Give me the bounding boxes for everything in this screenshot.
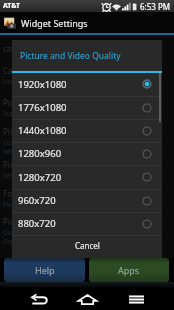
button[interactable]: 960x720 — [12, 190, 162, 213]
staticText: AT&T — [3, 1, 21, 11]
staticText: Picture Format — [3, 216, 59, 227]
button[interactable]: Menu — [119, 289, 153, 310]
staticText: During capture Copy to — [3, 228, 50, 246]
staticText: Focus Mode — [3, 188, 49, 199]
button[interactable]: 1920x1080 — [12, 73, 162, 97]
staticText: Picture Size — [3, 97, 47, 108]
button[interactable]: 1280x960 — [12, 143, 162, 166]
staticText: Widget Settings — [21, 17, 88, 29]
staticText: Picture and Video Quality — [20, 50, 121, 62]
button[interactable]: Help — [4, 258, 85, 282]
button[interactable]: Cancel — [12, 236, 162, 258]
staticText: 960x720 — [18, 194, 56, 207]
staticText: Camcorder Profile — [3, 65, 71, 76]
staticText: Picture and Video — [3, 159, 69, 170]
staticText: 1280x720 — [18, 171, 62, 184]
button[interactable]: Home — [70, 289, 104, 310]
staticText: Standard — [3, 109, 31, 118]
staticText: 1776x1080 — [18, 101, 67, 114]
button[interactable]: 1440x1080 — [12, 120, 162, 143]
staticText: Settings — [3, 171, 28, 180]
staticText: 1280x960 — [18, 147, 62, 160]
staticText: Flash — [3, 200, 19, 209]
staticText: Picture Compression — [3, 126, 81, 137]
staticText: 6:53 PM — [140, 1, 171, 12]
button[interactable]: 1280x720 — [12, 166, 162, 190]
staticText: Help — [35, 264, 55, 276]
staticText: 1920x1080 — [18, 78, 67, 91]
button[interactable]: Apps — [89, 258, 169, 282]
staticText: cation Quality — [3, 43, 55, 54]
staticText: Custom quality: 80% when sharing — [3, 138, 66, 156]
staticText: Apps — [118, 264, 140, 276]
staticText: 1440x1080 — [18, 124, 67, 137]
staticText: 880x720 — [18, 217, 56, 230]
button[interactable]: 1776x1080 — [12, 97, 162, 120]
staticText: Cancel — [75, 240, 100, 251]
staticText: Use system setting — [3, 77, 61, 86]
button[interactable]: Back — [22, 289, 56, 310]
button[interactable]: 880x720 — [12, 213, 162, 236]
